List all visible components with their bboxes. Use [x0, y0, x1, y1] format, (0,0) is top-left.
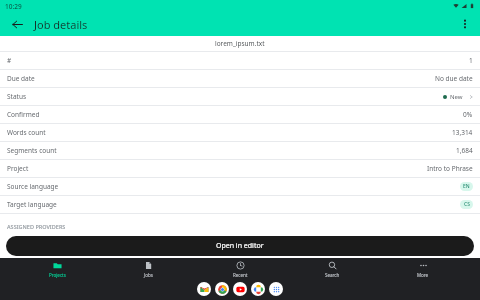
button[interactable]: More options [456, 15, 474, 33]
button[interactable]: Open in editor [6, 236, 474, 256]
button[interactable]: Status [0, 88, 480, 106]
staticText: Due date [7, 74, 35, 83]
button[interactable]: Search [297, 258, 367, 280]
button[interactable]: Target language [0, 196, 480, 214]
staticText: 1 [469, 56, 473, 65]
button[interactable]: Due date [0, 70, 480, 88]
button[interactable]: Photos [251, 282, 265, 296]
staticText: Intro to Phrase [427, 164, 473, 173]
staticText: Source language [7, 182, 59, 191]
staticText: 0% [463, 110, 473, 119]
staticText: Projects [49, 272, 66, 278]
staticText: EN [463, 183, 470, 190]
button[interactable]: More [388, 258, 458, 280]
button[interactable]: YouTube [233, 282, 247, 296]
button[interactable]: Segments count [0, 142, 480, 160]
button[interactable]: # [0, 52, 480, 70]
button[interactable]: Words count [0, 124, 480, 142]
button[interactable]: Recent [205, 258, 275, 280]
staticText: Project [7, 164, 29, 173]
button[interactable]: Back [8, 15, 26, 33]
staticText: Segments count [7, 146, 57, 155]
button[interactable]: Project [0, 160, 480, 178]
staticText: Words count [7, 128, 46, 137]
staticText: Job details [34, 17, 88, 32]
staticText: Open in editor [216, 241, 264, 251]
staticText: No due date [435, 74, 473, 83]
staticText: Status [7, 92, 27, 101]
button[interactable]: Source language [0, 178, 480, 196]
staticText: CS [464, 201, 470, 208]
button[interactable]: All apps [269, 282, 283, 296]
staticText: 10:29 [5, 2, 22, 11]
button[interactable]: Confirmed [0, 106, 480, 124]
staticText: ASSIGNED PROVIDERS [7, 223, 66, 230]
staticText: 13,314 [452, 128, 473, 137]
staticText: Confirmed [7, 110, 40, 119]
button[interactable]: Jobs [113, 258, 183, 280]
button[interactable]: Projects [22, 258, 92, 280]
staticText: Search [325, 272, 340, 278]
staticText: lorem_ipsum.txt [215, 39, 265, 48]
button[interactable]: Gmail [197, 282, 211, 296]
staticText: Jobs [144, 272, 153, 278]
staticText: Target language [7, 200, 57, 209]
button[interactable]: Chrome [215, 282, 229, 296]
staticText: 1,684 [456, 146, 473, 155]
staticText: New [450, 93, 463, 101]
staticText: More [417, 272, 429, 278]
staticText: Recent [233, 272, 248, 278]
staticText: # [7, 56, 12, 65]
